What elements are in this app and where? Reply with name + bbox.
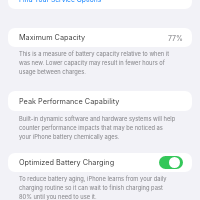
staticText: Built-in dynamic software and hardware s… [19,114,176,141]
staticText: Peak Performance Capability [19,97,120,106]
staticText: 77% [168,34,183,42]
staticText: To reduce battery aging, iPhone learns f… [19,174,167,200]
staticText: Find Your Service Options [19,0,102,4]
staticText: This is a measure of battery capacity re… [19,49,170,76]
button[interactable]: Find Your Service Options [8,0,192,9]
staticText: Optimized Battery Charging [19,158,115,167]
button[interactable]: Optimized Battery Charging toggle [159,156,183,169]
staticText: Maximum Capacity [19,33,86,42]
button[interactable]: Optimized Battery Charging [8,153,192,172]
button[interactable]: Peak Performance Capability [8,91,192,111]
button[interactable]: Maximum Capacity [8,28,192,47]
